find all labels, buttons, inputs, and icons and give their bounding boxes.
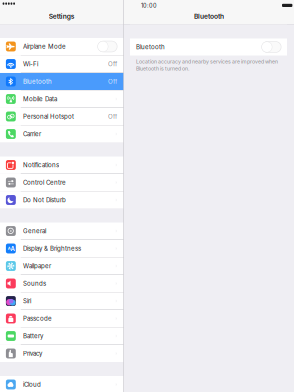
button[interactable]: Privacy [0, 345, 123, 362]
button[interactable]: Control Centre [0, 174, 123, 191]
staticText: Sounds [23, 280, 46, 287]
button[interactable]: Bluetooth [0, 73, 123, 90]
staticText: Battery [23, 332, 43, 340]
staticText: Personal Hotspot [23, 113, 74, 120]
staticText: A [10, 245, 14, 252]
staticText: Airplane Mode [23, 43, 66, 50]
staticText: iCloud [23, 381, 41, 388]
staticText: 10:00 [141, 2, 157, 9]
staticText: Carrier [23, 130, 41, 138]
button[interactable]: Siri [0, 292, 123, 309]
staticText: Wallpaper [23, 262, 51, 270]
button[interactable]: Sounds [0, 275, 123, 292]
staticText: Bluetooth [136, 43, 165, 51]
staticText: Location accuracy and nearby services ar… [136, 58, 278, 65]
button[interactable]: A [0, 240, 123, 257]
button[interactable]: Personal Hotspot [0, 108, 123, 125]
staticText: Off [108, 113, 117, 120]
staticText: Notifications [23, 161, 59, 169]
staticText: Bluetooth [23, 78, 52, 85]
button[interactable]: iCloud [0, 376, 123, 392]
staticText: Control Centre [23, 179, 66, 186]
staticText: Off [108, 78, 117, 85]
button[interactable]: Wi-Fi [0, 55, 123, 72]
button[interactable]: Mobile Data [0, 90, 123, 107]
button[interactable]: Passcode [0, 310, 123, 327]
button[interactable]: Bluetooth [130, 38, 287, 55]
staticText: Wi-Fi [23, 60, 38, 68]
button[interactable]: Airplane Mode [0, 38, 123, 55]
staticText: A [8, 246, 11, 251]
button[interactable]: General [0, 222, 123, 239]
button[interactable]: Battery [0, 327, 123, 344]
staticText: General [23, 227, 46, 235]
staticText: Privacy [23, 350, 42, 357]
staticText: Do Not Disturb [23, 196, 66, 204]
button[interactable]: Notifications [0, 156, 123, 173]
staticText: Settings [49, 12, 75, 20]
staticText: Bluetooth [194, 12, 224, 20]
button[interactable]: Wallpaper [0, 257, 123, 274]
staticText: Passcode [23, 315, 52, 322]
staticText: Off [108, 60, 117, 68]
staticText: Mobile Data [23, 95, 57, 103]
button[interactable]: Carrier [0, 125, 123, 142]
button[interactable]: Do Not Disturb [0, 191, 123, 208]
staticText: Display & Brightness [23, 245, 81, 252]
staticText: Siri [23, 297, 31, 305]
staticText: Bluetooth is turned on. [136, 65, 189, 72]
